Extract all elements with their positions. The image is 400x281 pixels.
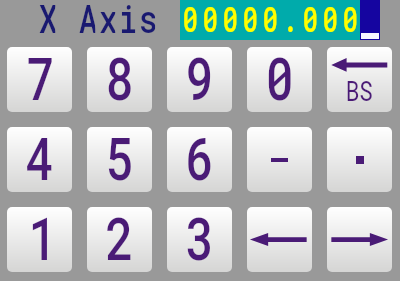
staticText: A — [79, 0, 95, 33]
button[interactable]: 5 — [87, 127, 152, 192]
staticText: 1 — [29, 207, 57, 263]
button[interactable]: 1 — [7, 207, 72, 272]
button[interactable]: Move cursor left — [247, 207, 312, 272]
staticText: 7 — [27, 47, 55, 103]
staticText: 0 — [266, 47, 294, 103]
button[interactable]: 6 — [167, 127, 232, 192]
staticText: BS — [346, 73, 373, 109]
button[interactable]: 0 — [247, 47, 312, 112]
staticText: 0 — [263, 0, 277, 35]
staticText: 0 — [243, 0, 257, 35]
button[interactable]: Backspace — [327, 47, 392, 112]
staticText: 9 — [186, 47, 214, 103]
staticText: X — [39, 0, 55, 33]
button[interactable]: 7 — [7, 47, 72, 112]
staticText: x — [99, 0, 115, 33]
staticText: 4 — [26, 127, 54, 183]
staticText: 5 — [106, 127, 134, 183]
staticText: 0 — [223, 0, 237, 35]
button[interactable]: 9 — [167, 47, 232, 112]
staticText: 0 — [203, 0, 217, 35]
staticText: 2 — [106, 207, 134, 263]
staticText: . — [283, 0, 297, 35]
staticText: 3 — [186, 207, 214, 263]
staticText: 6 — [186, 127, 214, 183]
button[interactable]: 2 — [87, 207, 152, 272]
button[interactable]: Minus — [247, 127, 312, 192]
staticText: 0 — [323, 0, 337, 35]
staticText: s — [139, 0, 155, 33]
button[interactable]: Decimal point — [327, 127, 392, 192]
staticText: 0 — [303, 0, 317, 35]
button[interactable]: 4 — [7, 127, 72, 192]
staticText: 0 — [183, 0, 197, 35]
button[interactable]: Move cursor right — [327, 207, 392, 272]
button[interactable]: 3 — [167, 207, 232, 272]
staticText: 0 — [343, 0, 357, 35]
button[interactable]: 8 — [87, 47, 152, 112]
staticText: i — [119, 0, 135, 33]
staticText: 8 — [106, 47, 134, 103]
